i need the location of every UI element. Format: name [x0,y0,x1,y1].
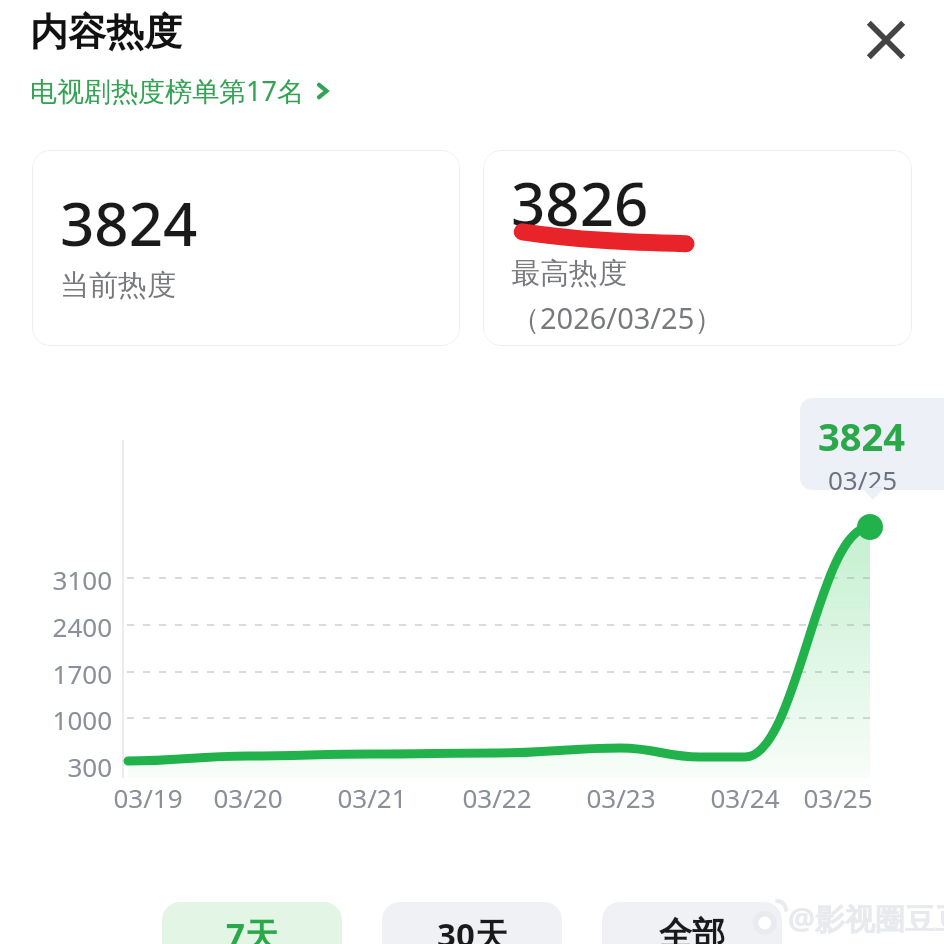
staticText: （2026/03/25） [511,298,724,338]
staticText: 03/19 [113,780,183,814]
staticText: 内容热度 [30,8,182,56]
button[interactable]: 3824 [32,150,460,346]
staticText: 3100 [20,562,112,596]
button[interactable]: 30天 [382,902,562,944]
staticText: 全部 [659,913,725,944]
staticText: 7天 [226,912,278,944]
staticText: 3824 [60,182,198,264]
staticText: 当前热度 [60,267,176,304]
staticText: 300 [20,749,112,783]
staticText: 03/22 [462,780,532,814]
staticText: @影视圈豆豆 [788,898,944,939]
staticText: 03/21 [337,780,407,814]
staticText: 3824 [818,410,905,462]
button[interactable]: 3826 [483,150,912,346]
staticText: 2400 [20,609,112,643]
staticText: 03/25 [803,780,873,814]
staticText: 3826 [511,162,649,244]
staticText: 03/20 [213,780,283,814]
button[interactable]: Close [850,4,922,76]
staticText: 1700 [20,656,112,690]
staticText: 电视剧热度榜单第17名 [30,72,304,109]
button[interactable]: 7天 [162,902,342,944]
staticText: 03/25 [828,462,898,490]
button[interactable]: 电视剧热度榜单第17名 [30,72,334,109]
staticText: 03/23 [586,780,656,814]
staticText: 03/24 [710,780,780,814]
staticText: 30天 [437,912,508,944]
staticText: 最高热度 [511,255,627,292]
button[interactable]: 全部 [602,902,782,944]
staticText: 1000 [20,702,112,736]
